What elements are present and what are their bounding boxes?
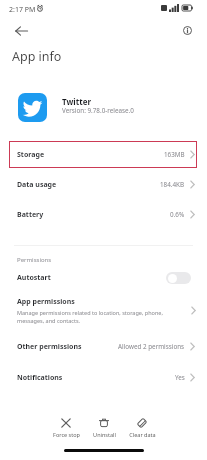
button[interactable]: Data usage <box>0 170 207 199</box>
staticText: Twitter <box>62 96 91 107</box>
staticText: App info <box>12 48 62 65</box>
button[interactable]: App permissions <box>0 293 207 327</box>
staticText: Force stop <box>53 431 80 438</box>
button[interactable]: Clear data <box>128 418 156 438</box>
staticText: Allowed 2 permissions <box>118 342 185 351</box>
button[interactable]: Uninstall <box>90 418 118 438</box>
staticText: 2:17 PM <box>9 5 36 15</box>
button[interactable]: Autostart <box>0 263 207 292</box>
staticText: 184.4KB <box>160 180 185 189</box>
button[interactable]: Storage <box>0 140 207 169</box>
staticText: App permissions <box>17 297 75 307</box>
staticText: Battery <box>17 210 44 220</box>
button[interactable]: Notifications <box>0 363 207 392</box>
staticText: Uninstall <box>93 431 116 438</box>
staticText: Storage <box>17 150 45 160</box>
staticText: Version: 9.78.0-release.0 <box>62 106 134 115</box>
button[interactable]: Back <box>9 18 34 43</box>
staticText: Manage permissions related to location, … <box>17 309 163 325</box>
button[interactable]: Force stop <box>52 418 80 438</box>
button[interactable]: Other permissions <box>0 332 207 361</box>
staticText: Other permissions <box>17 342 82 352</box>
staticText: Data usage <box>17 180 57 190</box>
button[interactable]: About this app <box>175 18 200 43</box>
staticText: Autostart <box>17 273 51 283</box>
staticText: 0.6% <box>170 210 185 219</box>
staticText: Notifications <box>17 373 63 383</box>
staticText: Yes <box>175 373 185 382</box>
staticText: 163MB <box>164 150 185 159</box>
staticText: Permissions <box>17 256 52 264</box>
button[interactable]: Battery <box>0 200 207 229</box>
staticText: Clear data <box>129 431 156 438</box>
